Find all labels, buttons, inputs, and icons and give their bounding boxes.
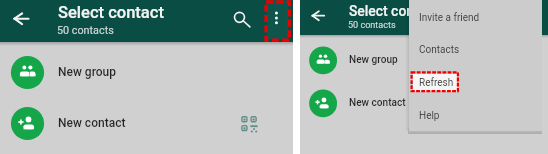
button[interactable]: Refresh [409,67,542,97]
button[interactable]: More options [264,6,288,31]
staticText: Contacts [419,44,460,56]
staticText: 50 contacts [348,20,396,31]
button[interactable]: Help [409,97,542,131]
staticText: Refresh [419,77,454,89]
staticText: Select contact [349,3,438,19]
staticText: New contact [349,97,406,109]
button[interactable]: Contacts [409,32,542,67]
button[interactable]: New contact [300,82,546,125]
staticText: Invite a friend [419,12,480,24]
button[interactable]: QR code [241,116,258,133]
button[interactable]: New contact [0,98,293,149]
button[interactable]: Back [307,5,329,27]
button[interactable]: Search [227,6,252,31]
button[interactable]: Back [8,6,34,32]
button[interactable]: New group [0,47,293,98]
staticText: New group [349,54,398,66]
staticText: Help [419,110,440,122]
staticText: New group [58,65,116,79]
staticText: 50 contacts [57,24,114,37]
button[interactable]: Invite a friend [409,0,542,32]
staticText: Select contact [58,3,164,22]
button[interactable]: New group [300,39,546,82]
staticText: New contact [58,116,126,130]
